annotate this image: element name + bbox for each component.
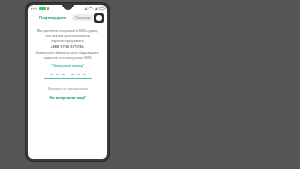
staticText: Введите в показанном	[48, 86, 88, 91]
button[interactable]: Помощь	[72, 14, 94, 21]
staticText: Подтвердить	[39, 15, 67, 21]
staticText: +880 1730 571736.	[50, 44, 85, 49]
staticText: Помощь	[75, 15, 91, 20]
button[interactable]: Не получили код?	[48, 94, 87, 101]
staticText: Заполните ввезено или надождите, пришло …	[34, 50, 101, 60]
button[interactable]: "Неверный номер"	[50, 62, 86, 69]
staticText: Мы должны отправить SMS-судно, так как в…	[34, 28, 101, 43]
button[interactable]: Введите в показанном	[47, 85, 89, 92]
button[interactable]: Профиль	[94, 13, 104, 23]
staticText: Не получили код?	[49, 95, 86, 100]
staticText: "Неверный номер"	[51, 63, 85, 68]
button[interactable]: Подтвердить	[37, 14, 69, 22]
